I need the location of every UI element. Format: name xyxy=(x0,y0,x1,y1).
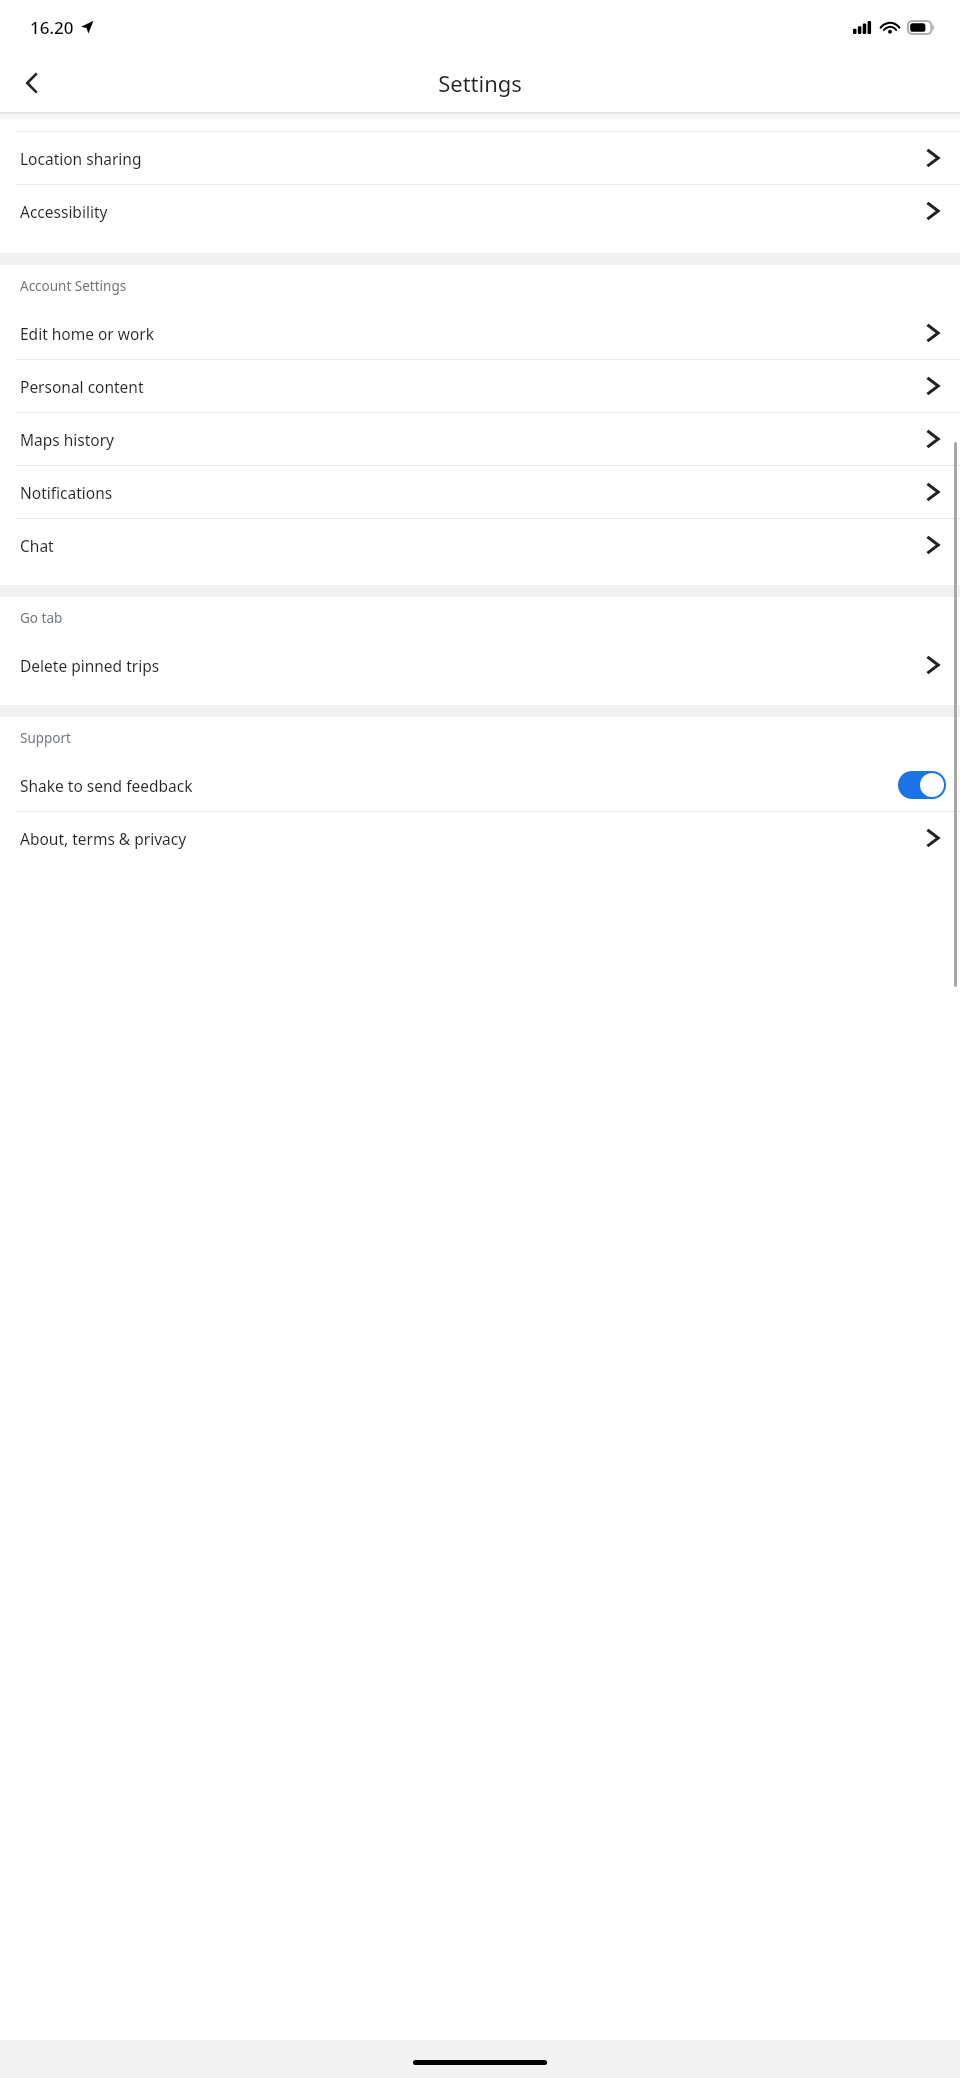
button[interactable]: Shake to send feedback xyxy=(0,759,960,811)
staticText: Accessibility xyxy=(20,201,920,222)
staticText: Shake to send feedback xyxy=(20,775,898,796)
staticText: Personal content xyxy=(20,376,920,397)
staticText: Go tab xyxy=(20,609,63,627)
staticText: Chat xyxy=(20,535,920,556)
staticText: Location sharing xyxy=(20,148,920,169)
button[interactable]: About, terms & privacy xyxy=(0,812,960,864)
button[interactable]: Location sharing xyxy=(0,132,960,184)
button[interactable]: Chat xyxy=(0,519,960,571)
staticText: About, terms & privacy xyxy=(20,828,920,849)
staticText: Maps history xyxy=(20,429,920,450)
button[interactable]: Back xyxy=(8,59,56,107)
staticText: Account Settings xyxy=(20,277,127,295)
button[interactable]: Maps history xyxy=(0,413,960,465)
staticText: Settings xyxy=(438,68,522,98)
button[interactable]: Delete pinned trips xyxy=(0,639,960,691)
button[interactable]: Personal content xyxy=(0,360,960,412)
button[interactable]: Edit home or work xyxy=(0,307,960,359)
staticText: Delete pinned trips xyxy=(20,655,920,676)
staticText: Notifications xyxy=(20,482,920,503)
button[interactable]: Notifications xyxy=(0,466,960,518)
staticText: Edit home or work xyxy=(20,323,920,344)
button[interactable]: Accessibility xyxy=(0,185,960,237)
staticText: 16.20 xyxy=(30,16,74,39)
staticText: Support xyxy=(20,729,71,747)
